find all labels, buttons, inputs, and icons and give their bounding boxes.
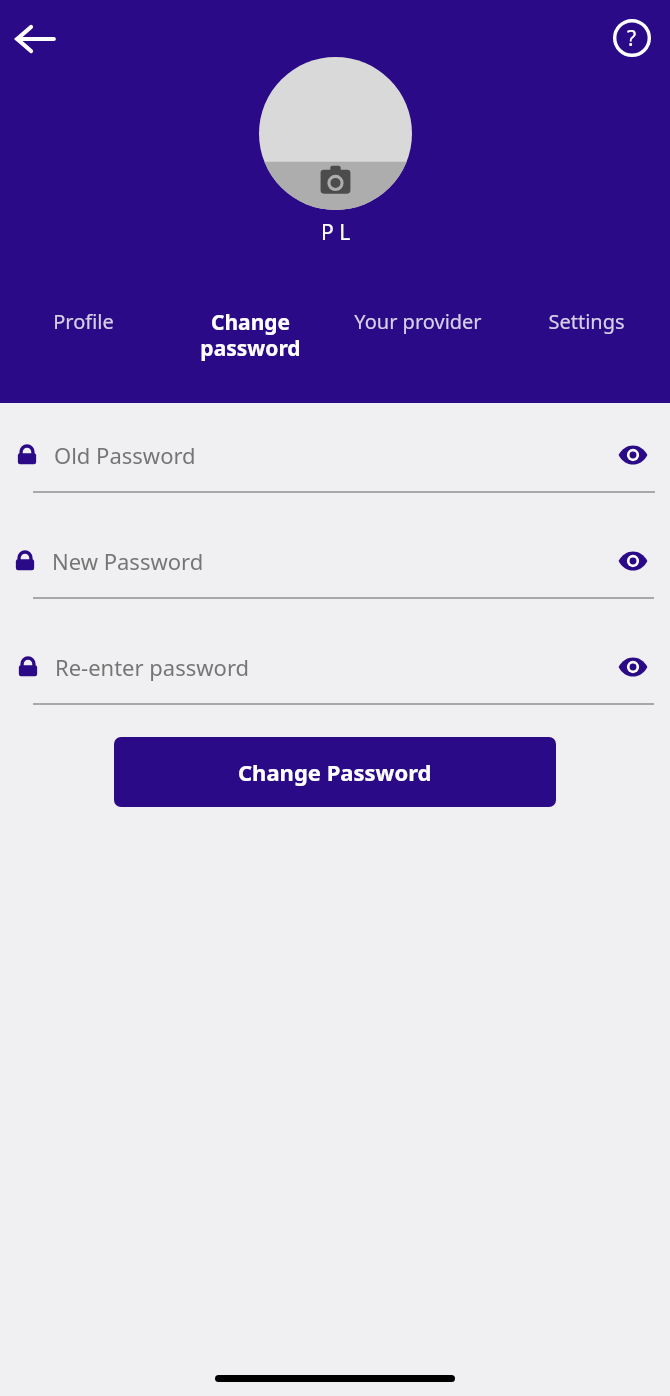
staticText: Your provider <box>354 308 482 335</box>
button[interactable]: Change password <box>167 308 334 388</box>
staticText: Re-enter password <box>55 652 250 682</box>
staticText: Change password <box>200 308 301 362</box>
button[interactable]: Profile <box>0 308 167 388</box>
staticText: Old Password <box>54 440 196 470</box>
staticText: Settings <box>548 308 625 335</box>
button[interactable]: Settings <box>502 308 670 388</box>
staticText: New Password <box>52 546 204 576</box>
staticText: P L <box>321 218 351 247</box>
staticText: Profile <box>53 308 114 335</box>
button[interactable]: Change profile photo <box>259 57 412 210</box>
button[interactable]: Show password <box>612 540 654 582</box>
button[interactable]: Re-enter password <box>0 643 670 705</box>
button[interactable]: Old Password <box>0 431 670 493</box>
staticText: ? <box>627 24 637 53</box>
staticText: Change Password <box>238 757 432 787</box>
button[interactable]: Show password <box>612 434 654 476</box>
button[interactable]: Help <box>606 12 658 64</box>
button[interactable]: Show password <box>612 646 654 688</box>
button[interactable]: Your provider <box>334 308 502 388</box>
button[interactable]: New Password <box>0 537 670 599</box>
button[interactable]: Change Password <box>114 737 556 807</box>
button[interactable]: Back <box>6 10 64 68</box>
